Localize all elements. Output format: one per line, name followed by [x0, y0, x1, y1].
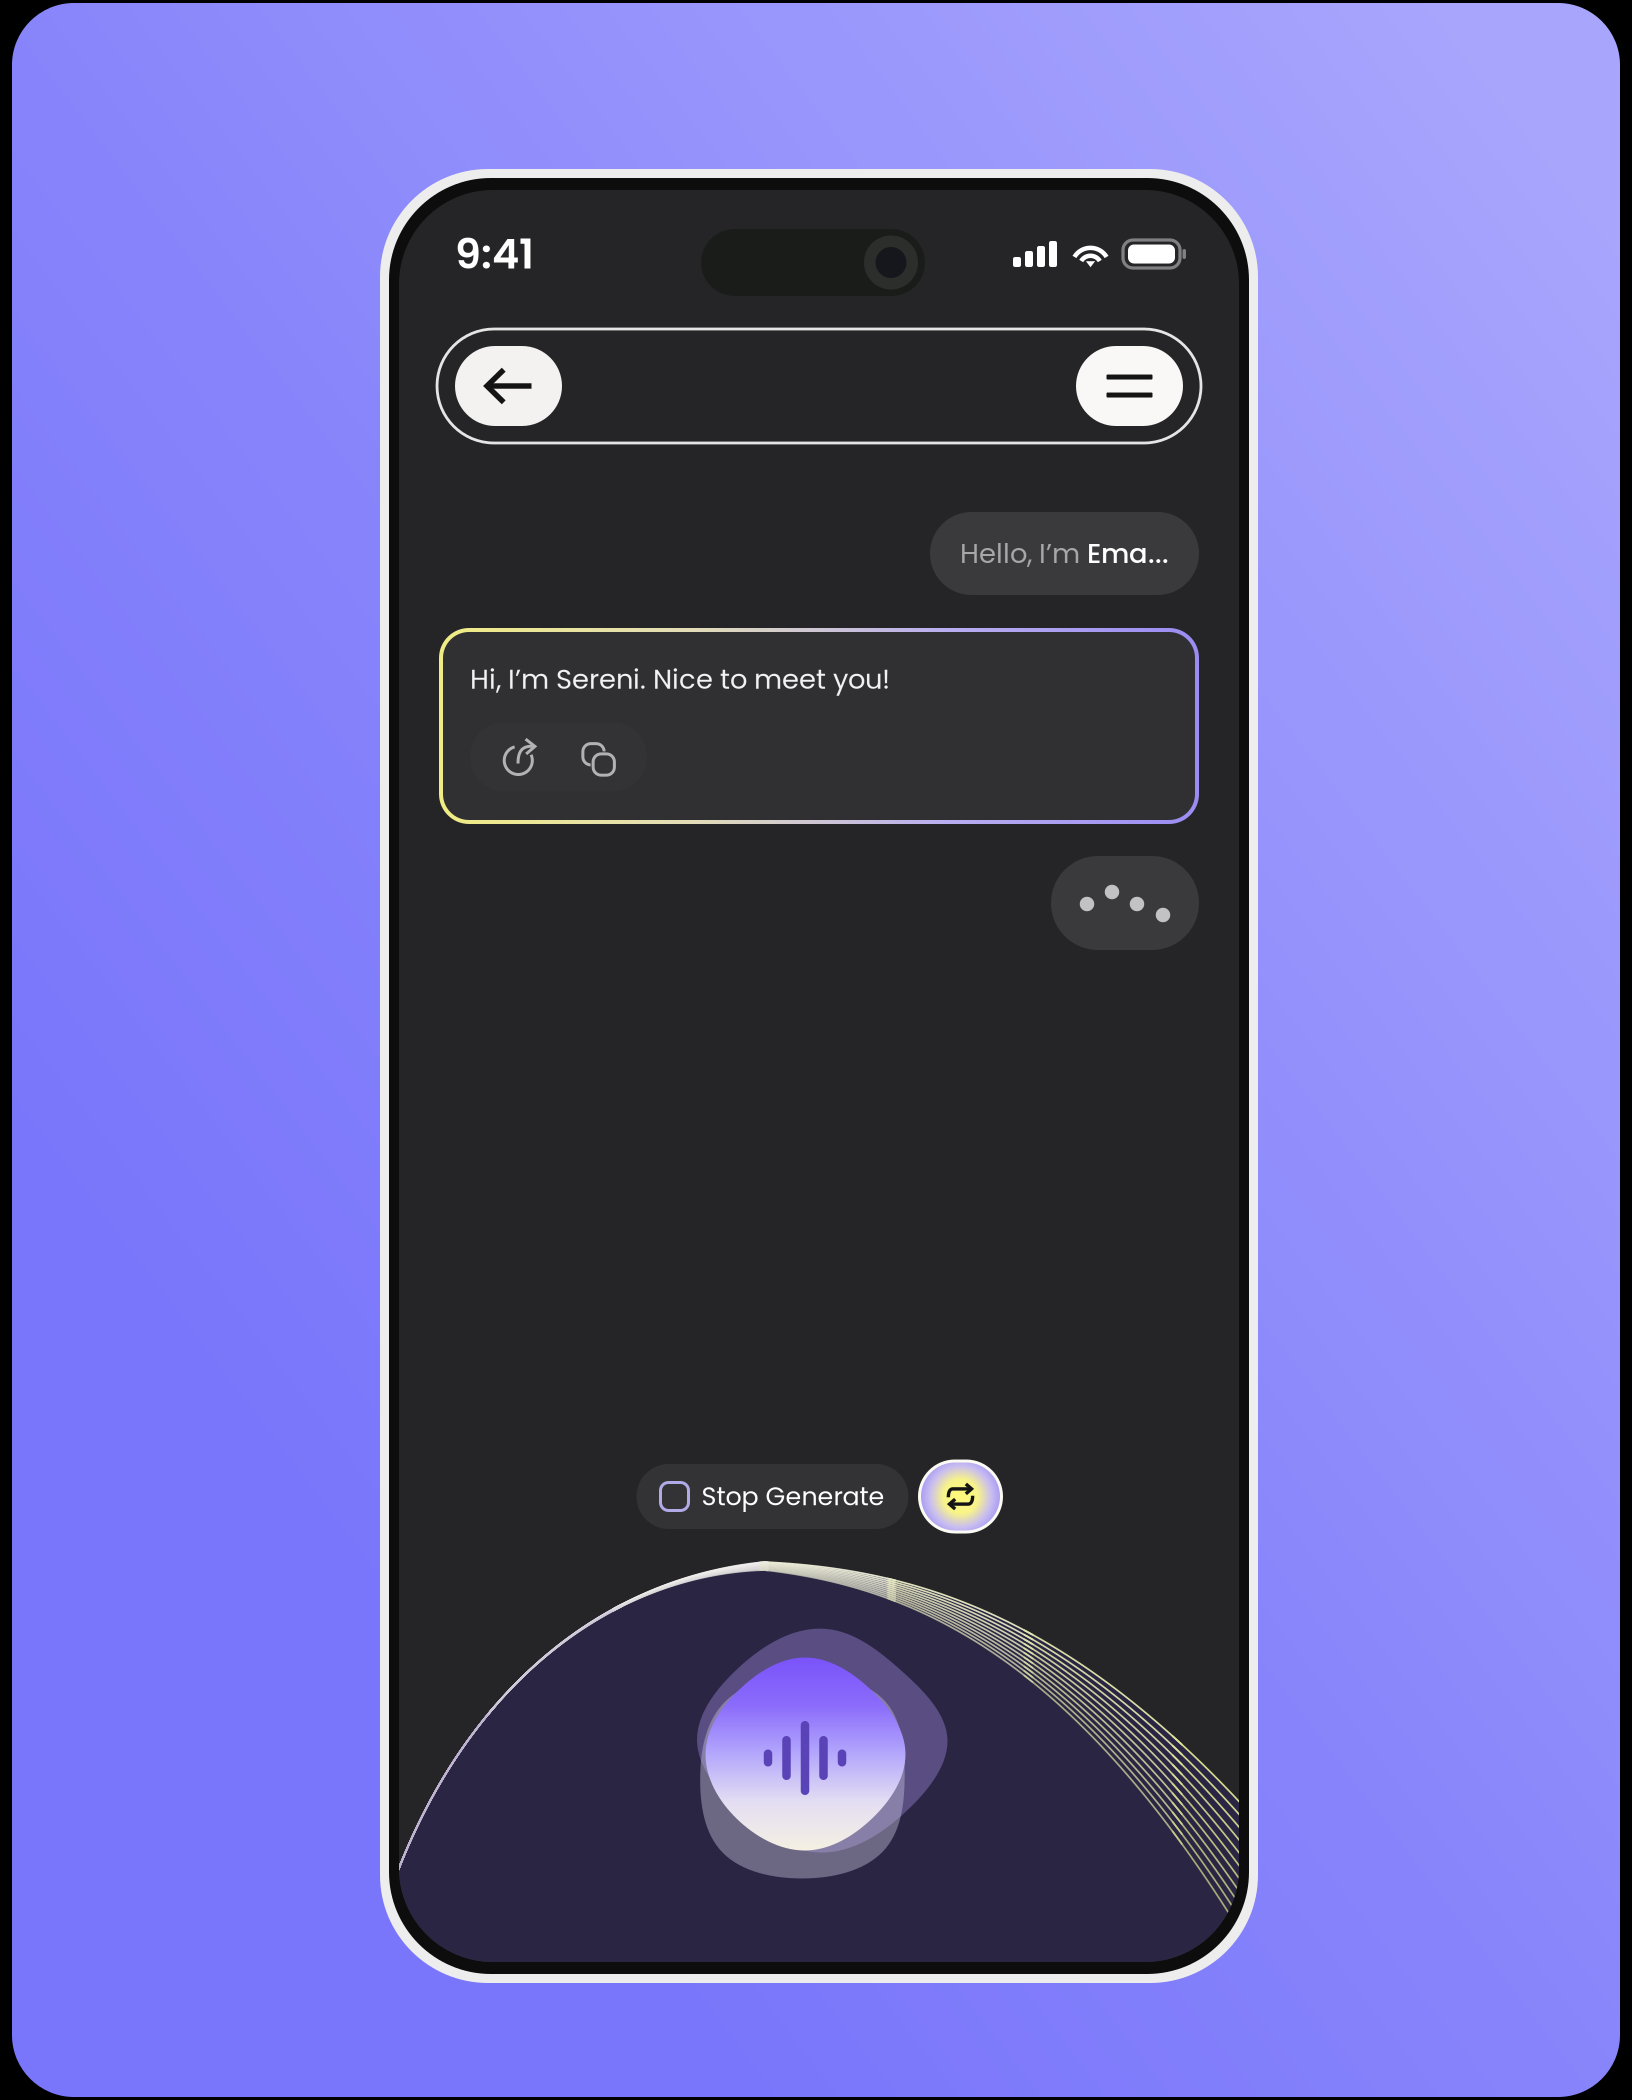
button[interactable]: Back	[455, 346, 562, 426]
staticText: Ema...	[1087, 534, 1169, 573]
button[interactable]: Stop Generate	[636, 1464, 908, 1529]
staticText: Hi, I’m Sereni. Nice to meet you!	[470, 660, 890, 698]
button[interactable]: Menu	[1076, 346, 1183, 426]
staticText: Stop Generate	[701, 1479, 884, 1514]
staticText: 9:41	[455, 225, 534, 283]
staticText: Hello, I’m	[960, 534, 1087, 573]
button[interactable]: Copy	[571, 738, 621, 776]
button[interactable]: Regenerate	[919, 1461, 1001, 1532]
button[interactable]: Share	[496, 738, 545, 775]
